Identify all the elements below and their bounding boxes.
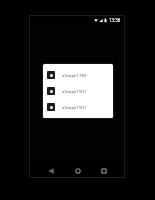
staticText: 13:36	[109, 17, 121, 23]
button[interactable]: Recent apps	[97, 164, 111, 177]
staticText: eScope1901	[62, 88, 87, 94]
staticText: eScope1901	[62, 104, 87, 110]
staticText: eScope1789	[62, 72, 87, 78]
button[interactable]: Back	[44, 164, 58, 177]
button[interactable]: eScope1901	[43, 83, 113, 99]
button[interactable]: Home	[71, 164, 85, 177]
button[interactable]: eScope1789	[43, 67, 113, 83]
button[interactable]: eScope1901	[43, 99, 113, 115]
